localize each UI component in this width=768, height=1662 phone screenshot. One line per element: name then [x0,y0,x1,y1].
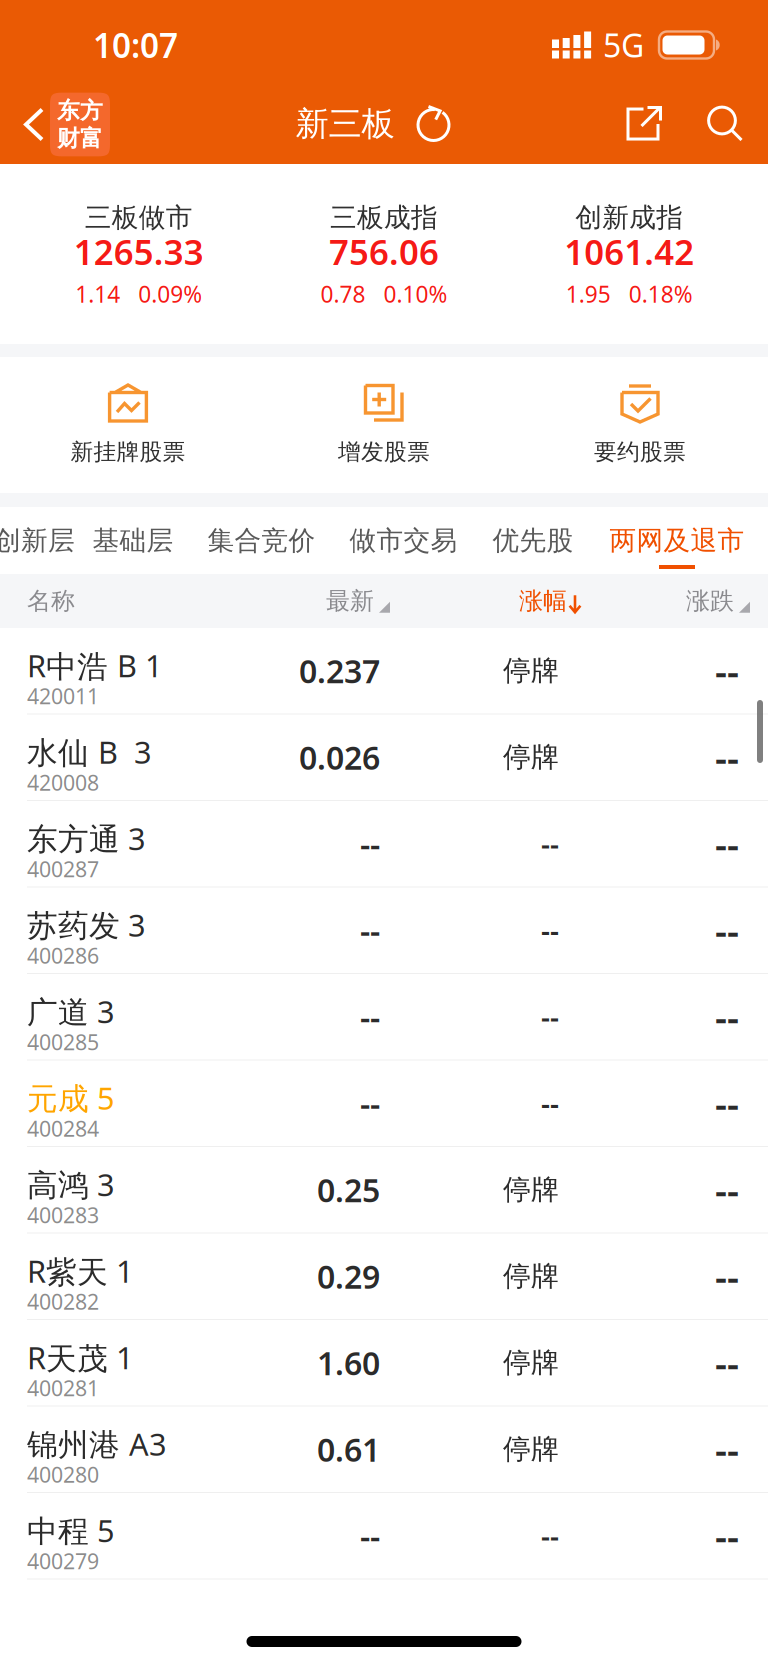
button[interactable]: 创新成指 [507,204,752,305]
staticText: -- [715,819,739,869]
staticText: 停牌 [503,740,559,774]
button[interactable]: 创新层 [0,508,75,573]
staticText: 0.10% [383,279,447,309]
staticText: 0.237 [299,649,380,692]
button[interactable]: Search [700,94,750,154]
staticText: 400282 [27,1287,99,1316]
staticText: -- [541,998,559,1035]
staticText: 1265.33 [74,228,204,274]
staticText: 新挂牌股票 [70,438,185,466]
button[interactable]: 集合竞价 [191,508,332,573]
staticText: 锦州港 A3 [27,1423,167,1464]
staticText: 400284 [27,1114,99,1142]
staticText: -- [715,1078,739,1128]
button[interactable]: R天茂 1 [0,1320,768,1406]
staticText: 420011 [27,682,99,710]
button[interactable]: 涨跌 [582,574,750,628]
staticText: 广道 3 [27,991,115,1032]
staticText: 1.60 [317,1341,380,1384]
button[interactable]: 两网及退市 [591,508,763,573]
staticText: 0.61 [317,1428,380,1470]
staticText: 创新层 [0,524,75,557]
staticText: -- [715,646,739,696]
staticText: 5G [603,24,644,66]
button[interactable]: 增发股票 [256,383,512,464]
staticText: 高鸿 3 [27,1164,115,1205]
staticText: 停牌 [503,1173,559,1207]
button[interactable]: 涨幅 [390,574,582,628]
button[interactable]: Refresh [411,94,455,154]
staticText: -- [541,912,559,949]
button[interactable]: R中浩 B 1 [0,628,768,714]
button[interactable]: 三板成指 [261,204,507,305]
staticText: -- [715,1165,739,1215]
staticText: 0.18% [629,279,693,309]
staticText: 停牌 [503,654,559,688]
staticText: -- [541,1085,559,1122]
staticText: 停牌 [503,1346,559,1380]
staticText: R中浩 B 1 [27,645,163,686]
staticText: 停牌 [503,1432,559,1466]
staticText: 涨跌 [686,586,734,616]
button[interactable]: 做市交易 [332,508,475,573]
staticText: 基础层 [92,524,173,557]
staticText: 0.29 [317,1255,380,1297]
staticText: -- [541,825,559,862]
staticText: -- [715,732,739,782]
button[interactable]: 新挂牌股票 [0,383,256,464]
button[interactable]: 高鸿 3 [0,1147,768,1233]
staticText: 最新 [326,586,374,616]
button[interactable]: 要约股票 [512,383,768,464]
button[interactable]: 三板做市 [16,204,261,305]
button[interactable]: 名称 [0,574,200,628]
button[interactable]: 基础层 [75,508,191,573]
staticText: 三板成指 [330,201,438,234]
staticText: 10:07 [93,23,178,67]
staticText: -- [715,1424,739,1474]
button[interactable]: R紫天 1 [0,1233,768,1320]
staticText: -- [715,1511,739,1561]
button[interactable]: 水仙 B 3 [0,714,768,801]
staticText: -- [360,822,380,865]
staticText: 名称 [27,586,75,616]
staticText: -- [360,1082,380,1124]
staticText: -- [715,1251,739,1301]
staticText: -- [715,1338,739,1388]
staticText: -- [715,992,739,1042]
staticText: 756.06 [329,228,439,274]
staticText: 集合竞价 [207,524,315,557]
staticText: 0.026 [299,736,380,778]
staticText: 400279 [27,1547,99,1575]
button[interactable]: 优先股 [475,508,591,573]
staticText: -- [360,909,380,951]
staticText: 苏药发 3 [27,904,146,945]
button[interactable]: 东方通 3 [0,801,768,887]
staticText: 三板做市 [85,201,193,234]
button[interactable]: 中程 5 [0,1493,768,1579]
staticText: 400285 [27,1028,99,1056]
staticText: 优先股 [492,524,573,557]
staticText: 停牌 [503,1259,559,1293]
button[interactable]: 锦州港 A3 [0,1406,768,1493]
staticText: 水仙 B 3 [27,731,152,772]
staticText: 元成 5 [27,1077,115,1118]
staticText: 创新成指 [575,201,683,234]
staticText: R天茂 1 [27,1337,134,1378]
staticText: 两网及退市 [609,524,744,557]
staticText: 420008 [27,768,99,796]
staticText: 400281 [27,1374,99,1402]
staticText: 新三板 [295,103,394,144]
staticText: 涨幅 [519,586,567,616]
staticText: 400283 [27,1201,99,1229]
button[interactable]: 元成 5 [0,1060,768,1147]
button[interactable]: Share [619,94,669,154]
staticText: -- [715,905,739,955]
button[interactable]: 最新 [200,574,390,628]
button[interactable]: 广道 3 [0,974,768,1060]
staticText: 要约股票 [594,438,686,466]
button[interactable]: Back to 东方财富 [0,80,122,164]
staticText: 0.78 [320,279,365,309]
button[interactable]: 苏药发 3 [0,887,768,974]
staticText: 增发股票 [338,438,430,466]
staticText: 400286 [27,941,99,969]
